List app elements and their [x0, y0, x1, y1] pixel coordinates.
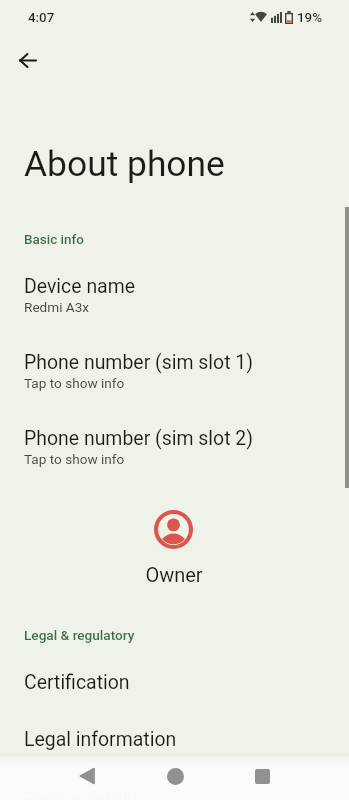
- staticText: Redmi A3x: [24, 299, 90, 315]
- staticText: Tap to show info: [24, 451, 125, 467]
- button[interactable]: Home: [153, 754, 197, 798]
- staticText: Device name: [24, 275, 136, 298]
- button[interactable]: Back: [64, 754, 108, 798]
- staticText: About phone: [24, 143, 225, 184]
- staticText: Basic info: [24, 232, 84, 248]
- button[interactable]: Back: [3, 36, 51, 84]
- staticText: Legal information: [24, 728, 177, 751]
- button[interactable]: Owner: [134, 500, 214, 588]
- staticText: Tap to show info: [24, 375, 125, 391]
- staticText: Legal & regulatory: [24, 627, 135, 643]
- button[interactable]: [0, 261, 349, 323]
- button[interactable]: [0, 714, 349, 762]
- button[interactable]: [0, 413, 349, 475]
- button[interactable]: Recents: [240, 754, 284, 798]
- button[interactable]: [0, 656, 349, 704]
- staticText: 19%: [297, 10, 323, 26]
- staticText: Certification: [24, 671, 130, 694]
- staticText: Owner: [134, 563, 214, 586]
- staticText: Phone number (sim slot 2): [24, 427, 254, 450]
- staticText: 4:07: [28, 10, 55, 26]
- button[interactable]: [0, 337, 349, 399]
- staticText: Phone number (sim slot 1): [24, 351, 254, 374]
